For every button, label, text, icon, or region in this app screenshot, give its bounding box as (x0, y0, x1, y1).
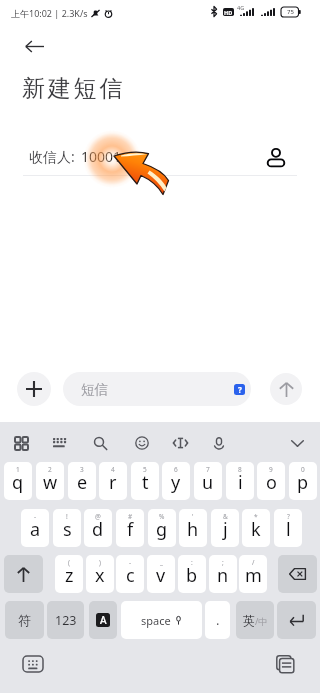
button[interactable]: Add attachment (17, 372, 51, 406)
staticText: 2 (48, 465, 52, 474)
staticText: HD (224, 9, 233, 16)
staticText: . (216, 611, 220, 629)
button[interactable]: . (205, 601, 230, 639)
staticText: f (127, 517, 134, 542)
staticText: 3 (80, 465, 84, 474)
staticText: 8 (238, 465, 242, 474)
staticText: 英 (243, 613, 255, 628)
button[interactable]: : (178, 555, 206, 593)
staticText: c (126, 563, 135, 588)
button[interactable]: 1 (4, 462, 32, 500)
button[interactable]: 123 (47, 601, 84, 639)
staticText: l (286, 517, 291, 542)
button[interactable]: _ (147, 555, 175, 593)
button[interactable]: Search (88, 431, 112, 455)
button[interactable]: Send (270, 373, 302, 405)
button[interactable]: Back (21, 33, 47, 59)
button[interactable]: 7 (194, 462, 222, 500)
button[interactable]: Shift (4, 555, 43, 593)
button[interactable]: 0 (289, 462, 317, 500)
button[interactable]: - (21, 509, 49, 547)
button[interactable]: Hide keyboard (285, 431, 309, 455)
button[interactable]: 4 (99, 462, 127, 500)
button[interactable]: & (211, 509, 239, 547)
staticText: s (63, 517, 72, 542)
button[interactable]: % (148, 509, 176, 547)
button[interactable]: Voice input (207, 431, 231, 455)
button[interactable]: @ (84, 509, 112, 547)
button[interactable]: Apps (9, 431, 33, 455)
staticText: 6 (174, 465, 178, 474)
staticText: h (187, 517, 199, 542)
staticText: b (186, 563, 198, 588)
staticText: * (254, 512, 258, 521)
staticText: t (142, 470, 149, 495)
staticText: q (12, 470, 24, 495)
button[interactable]: Move cursor (168, 431, 192, 455)
button[interactable]: Backspace (278, 555, 317, 593)
staticText: n (217, 563, 229, 588)
button[interactable]: ' (179, 509, 207, 547)
staticText: % (159, 512, 165, 521)
button[interactable]: 6 (162, 462, 190, 500)
staticText: / (252, 558, 255, 567)
button[interactable]: ; (209, 555, 237, 593)
staticText: 7 (206, 465, 210, 474)
button[interactable]: 5 (131, 462, 159, 500)
staticText: e (77, 470, 88, 495)
button[interactable]: Keyboard (47, 431, 71, 455)
staticText: 0 (301, 465, 305, 474)
staticText: 上午10:02 | 2.3K/s (11, 7, 88, 19)
staticText: ' (192, 512, 194, 521)
staticText: j (223, 517, 228, 542)
button[interactable]: 2 (36, 462, 64, 500)
button[interactable]: Enter (277, 601, 316, 639)
staticText: y (171, 470, 181, 495)
button[interactable]: Switch keyboard (20, 652, 46, 676)
staticText: ? (287, 512, 290, 521)
staticText: # (128, 512, 133, 521)
button[interactable]: # (116, 509, 144, 547)
staticText: 5 (143, 465, 147, 474)
button[interactable]: ? (274, 509, 302, 547)
button[interactable]: space (121, 601, 202, 639)
button[interactable]: Switch input mode (89, 601, 117, 639)
staticText: ( (68, 558, 70, 567)
button[interactable]: 英 (236, 601, 274, 639)
staticText: 10001 (81, 147, 122, 166)
button[interactable]: Pick contact (264, 145, 288, 169)
button[interactable]: 符 (5, 601, 44, 639)
button[interactable]: 9 (257, 462, 285, 500)
staticText: z (65, 563, 74, 588)
staticText: ! (66, 512, 68, 521)
staticText: m (245, 563, 262, 588)
button[interactable]: 8 (226, 462, 254, 500)
button[interactable]: ( (55, 555, 83, 593)
button[interactable]: Clipboard (272, 652, 298, 676)
staticText: _ (160, 558, 163, 567)
staticText: 75 (287, 8, 294, 16)
staticText: /中 (255, 615, 268, 627)
staticText: 9 (269, 465, 273, 474)
button[interactable]: ) (86, 555, 114, 593)
staticText: i (238, 470, 243, 495)
button[interactable]: Emoji (130, 431, 154, 455)
staticText: - (34, 512, 37, 521)
button[interactable]: 短信 (63, 372, 251, 406)
button[interactable]: / (239, 555, 267, 593)
staticText: A (100, 613, 107, 627)
staticText: ) (99, 558, 101, 567)
staticText: v (156, 563, 166, 588)
staticText: 4 (111, 465, 115, 474)
button[interactable]: 3 (68, 462, 96, 500)
button[interactable]: ! (53, 509, 81, 547)
staticText: g (156, 517, 168, 542)
button[interactable]: - (116, 555, 144, 593)
staticText: 收信人: (29, 147, 75, 166)
staticText: d (92, 517, 104, 542)
staticText: ? (238, 384, 242, 395)
staticText: - (129, 558, 132, 567)
staticText: p (297, 470, 309, 495)
button[interactable]: * (242, 509, 270, 547)
staticText: 短信 (81, 381, 108, 398)
